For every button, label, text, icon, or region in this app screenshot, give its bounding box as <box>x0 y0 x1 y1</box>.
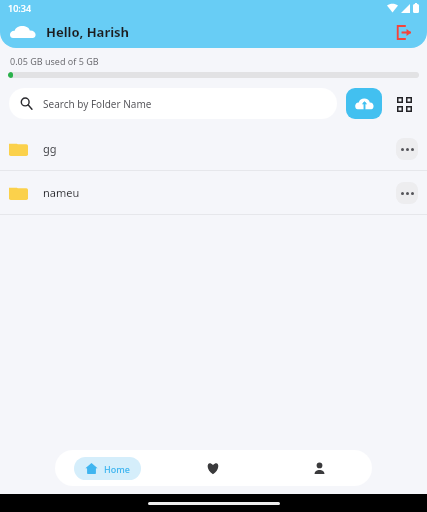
button[interactable]: More options <box>396 182 418 204</box>
staticText: 10:34 <box>8 2 32 14</box>
staticText: Search by Folder Name <box>43 97 152 111</box>
button[interactable]: Upload <box>346 88 382 119</box>
button[interactable]: Profile <box>266 450 372 486</box>
staticText: Hello, Harish <box>46 23 130 41</box>
button[interactable]: Grid view <box>390 90 418 118</box>
staticText: Home <box>104 463 130 475</box>
staticText: 0.05 GB used of 5 GB <box>10 55 99 67</box>
button[interactable]: More options <box>396 138 418 160</box>
button[interactable]: nameu <box>0 171 427 214</box>
button[interactable]: Favourites <box>160 450 266 486</box>
staticText: nameu <box>43 185 80 200</box>
staticText: gg <box>43 141 57 156</box>
button[interactable]: Home <box>74 457 141 480</box>
button[interactable]: Log out <box>389 18 417 46</box>
button[interactable]: Search by Folder Name <box>9 88 337 119</box>
button[interactable]: gg <box>0 127 427 170</box>
